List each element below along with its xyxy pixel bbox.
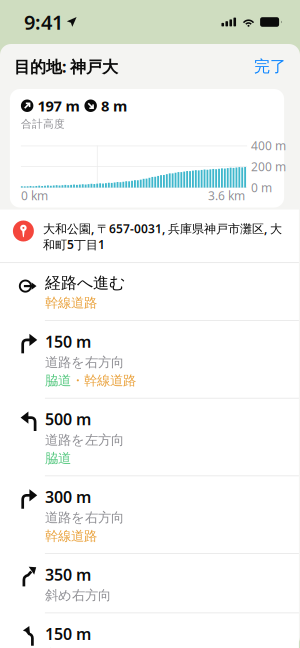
staticText: 0 m	[251, 180, 272, 195]
staticText: 道路を右方向	[45, 354, 124, 370]
staticText: 3.6 km	[208, 188, 245, 203]
staticText: 道路を右方向	[45, 509, 124, 526]
staticText: 大和公園, 〒657-0031, 兵庫県神戸市灘区, 大和町5丁目1	[43, 220, 282, 252]
button[interactable]: 完了	[244, 53, 286, 80]
staticText: 幹線道路	[45, 295, 97, 311]
staticText: 経路へ進む	[45, 273, 125, 293]
staticText: 斜め右方向	[45, 587, 111, 604]
staticText: 合計高度	[21, 117, 65, 131]
staticText: ・	[71, 372, 84, 389]
staticText: 200 m	[251, 159, 286, 174]
staticText: 幹線道路	[45, 528, 97, 544]
staticText: 道路を左方向	[45, 432, 124, 448]
staticText: 完了	[254, 57, 286, 76]
button[interactable]: 300 m	[0, 476, 299, 553]
staticText: 脇道	[45, 372, 71, 389]
staticText: 350 m	[45, 564, 91, 585]
staticText: 8 m	[97, 96, 127, 115]
staticText: 脇道	[45, 450, 71, 466]
button[interactable]: 経路へ進む	[0, 263, 299, 320]
staticText: 目的地: 神戸大	[14, 56, 118, 77]
button[interactable]: 150 m	[0, 321, 299, 398]
staticText: 9:41	[24, 9, 63, 35]
button[interactable]: 150 m	[0, 613, 299, 648]
staticText: 300 m	[45, 486, 91, 507]
staticText: 幹線道路	[84, 372, 136, 389]
staticText: 500 m	[45, 408, 91, 430]
staticText: 197 m	[33, 96, 79, 115]
button[interactable]: 500 m	[0, 398, 299, 475]
button[interactable]: 350 m	[0, 554, 299, 612]
button[interactable]: 大和公園, 〒657-0031, 兵庫県神戸市灘区, 大和町5丁目1	[0, 209, 299, 262]
staticText: 150 m	[45, 331, 91, 352]
staticText: 0 km	[21, 188, 48, 203]
staticText: 150 m	[45, 623, 91, 644]
staticText: 400 m	[251, 138, 286, 153]
